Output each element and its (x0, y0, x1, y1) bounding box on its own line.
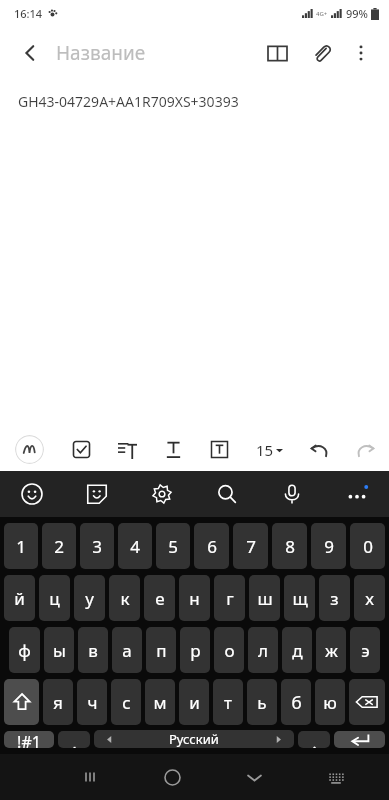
button[interactable]: и (179, 679, 209, 725)
button[interactable]: 6 (194, 523, 229, 569)
button[interactable]: 9 (311, 523, 346, 569)
staticText: 7 (246, 535, 256, 558)
button[interactable]: Attach (299, 31, 343, 75)
staticText: ю (323, 691, 337, 714)
button[interactable]: Change keyboard (295, 754, 377, 800)
button[interactable]: Checklist (58, 428, 104, 471)
button[interactable]: 3 (80, 523, 114, 569)
button[interactable]: Home (131, 754, 213, 800)
button[interactable]: н (179, 575, 210, 621)
button[interactable]: Emoji (0, 471, 64, 517)
staticText: Русский (169, 730, 219, 748)
staticText: 99% (346, 6, 368, 21)
button[interactable]: п (146, 627, 176, 673)
staticText: о (224, 639, 235, 662)
button[interactable]: Underline (150, 428, 196, 471)
button[interactable]: key (4, 679, 39, 725)
button[interactable]: ь (247, 679, 277, 725)
button[interactable]: 15 (243, 428, 295, 471)
button[interactable]: Draw (0, 428, 58, 471)
button[interactable]: й (4, 575, 35, 621)
button[interactable]: х (354, 575, 385, 621)
button[interactable]: , (58, 731, 90, 748)
button[interactable]: в (78, 627, 108, 673)
staticText: д (292, 639, 303, 662)
staticText: х (365, 587, 374, 610)
button[interactable]: Space, Русский (94, 730, 294, 748)
staticText: 5 (168, 535, 178, 558)
staticText: 9 (324, 535, 334, 558)
staticText: ь (257, 691, 267, 714)
button[interactable]: д (282, 627, 312, 673)
staticText: ш (257, 587, 273, 610)
button[interactable]: к (109, 575, 140, 621)
button[interactable]: щ (284, 575, 315, 621)
button[interactable]: ф (9, 627, 40, 673)
button[interactable]: б (281, 679, 311, 725)
button[interactable]: !#1 (4, 731, 54, 748)
button[interactable]: м (145, 679, 175, 725)
button[interactable]: г (214, 575, 245, 621)
button[interactable]: а (112, 627, 142, 673)
button[interactable]: Search (194, 471, 259, 517)
staticText: GH43-04729A+AA1R709XS+30393 (18, 92, 239, 111)
button[interactable]: я (43, 679, 73, 725)
button[interactable]: 5 (156, 523, 190, 569)
button[interactable]: з (319, 575, 350, 621)
button[interactable]: Back (10, 33, 50, 73)
staticText: и (189, 691, 200, 714)
button[interactable]: 2 (42, 523, 76, 569)
staticText: з (330, 587, 339, 610)
staticText: 0 (363, 535, 373, 558)
button[interactable]: key (334, 731, 385, 748)
staticText: ж (325, 639, 338, 662)
button[interactable]: у (74, 575, 105, 621)
button[interactable]: 8 (272, 523, 307, 569)
button[interactable]: о (214, 627, 244, 673)
button[interactable]: Voice input (259, 471, 324, 517)
button[interactable]: т (213, 679, 243, 725)
staticText: л (258, 639, 268, 662)
staticText: к (120, 587, 130, 610)
staticText: ф (18, 639, 31, 662)
staticText: я (53, 691, 63, 714)
button[interactable]: ч (77, 679, 107, 725)
button[interactable]: Redo (342, 428, 389, 471)
button[interactable]: 4 (118, 523, 152, 569)
button[interactable]: Undo (295, 428, 342, 471)
button[interactable]: р (180, 627, 210, 673)
button[interactable]: Reading mode (255, 31, 299, 75)
button[interactable]: . (298, 731, 330, 748)
staticText: р (190, 639, 201, 662)
staticText: а (122, 639, 132, 662)
button[interactable]: Settings (129, 471, 194, 517)
staticText: 15 (256, 440, 274, 460)
button[interactable]: More options (343, 35, 379, 71)
button[interactable]: key (349, 679, 385, 725)
button[interactable]: Indent (104, 428, 150, 471)
button[interactable]: ю (315, 679, 345, 725)
button[interactable]: ц (39, 575, 70, 621)
button[interactable]: е (144, 575, 175, 621)
button[interactable]: Stickers (64, 471, 129, 517)
button[interactable]: Hide keyboard (213, 754, 295, 800)
button[interactable]: с (111, 679, 141, 725)
button[interactable]: More (324, 471, 389, 517)
button[interactable]: ы (44, 627, 74, 673)
button[interactable]: 1 (4, 523, 38, 569)
button[interactable]: 7 (233, 523, 268, 569)
staticText: е (155, 587, 165, 610)
button[interactable]: 0 (350, 523, 385, 569)
button[interactable]: ж (316, 627, 346, 673)
staticText: ч (87, 691, 98, 714)
staticText: м (153, 691, 167, 714)
staticText: . (312, 731, 317, 748)
button[interactable]: л (248, 627, 278, 673)
button[interactable]: ш (249, 575, 280, 621)
button[interactable]: Recents (49, 754, 131, 800)
button[interactable]: Text box (196, 428, 243, 471)
staticText: 8 (285, 535, 295, 558)
button[interactable]: э (350, 627, 380, 673)
staticText: 16:14 (14, 6, 43, 21)
staticText: б (291, 691, 302, 714)
